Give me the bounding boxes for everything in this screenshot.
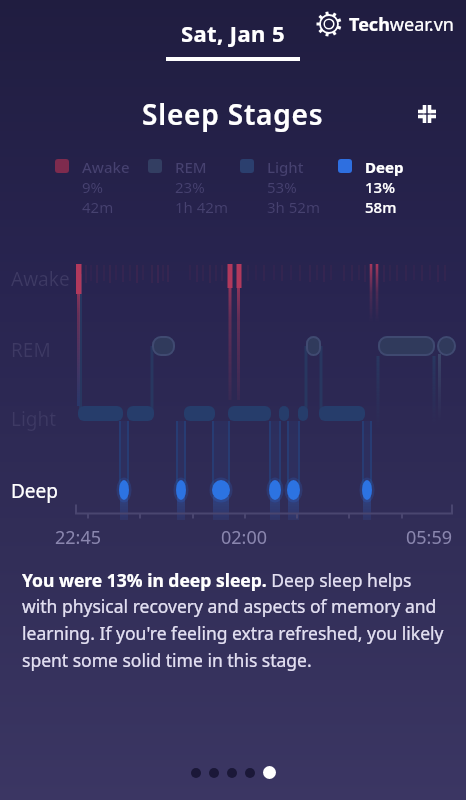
button[interactable]	[227, 768, 237, 778]
button[interactable]	[191, 768, 201, 778]
staticText: Sat, Jan 5	[181, 18, 285, 48]
button[interactable]: Light	[240, 157, 320, 217]
staticText: 22:45	[55, 525, 102, 550]
staticText: 9%	[82, 177, 104, 197]
staticText: You were 13% in deep sleep. Deep sleep h…	[22, 568, 444, 672]
staticText: REM	[175, 157, 207, 177]
staticText: Light	[267, 157, 304, 177]
staticText: Sleep Stages	[142, 95, 324, 133]
button[interactable]: Techwear.vn	[314, 9, 454, 39]
staticText: 02:00	[221, 525, 268, 550]
button[interactable]	[413, 100, 441, 128]
staticText: Awake	[82, 157, 130, 177]
staticText: Awake	[11, 266, 70, 292]
staticText: REM	[11, 337, 51, 363]
button[interactable]	[245, 768, 255, 778]
staticText: Light	[11, 406, 57, 432]
staticText: Deep	[11, 478, 58, 504]
staticText: 1h 42m	[175, 197, 228, 217]
staticText: Deep	[365, 157, 404, 177]
staticText: 05:59	[406, 525, 453, 550]
staticText: 13%	[365, 177, 395, 197]
button[interactable]	[209, 768, 219, 778]
button[interactable]: Deep	[338, 157, 404, 217]
staticText: Techwear.vn	[349, 12, 454, 37]
staticText: 53%	[267, 177, 297, 197]
staticText: 3h 52m	[267, 197, 320, 217]
staticText: 42m	[82, 197, 114, 217]
staticText: 58m	[365, 197, 397, 217]
button[interactable]: Awake	[55, 157, 130, 217]
button[interactable]: REM	[148, 157, 228, 217]
staticText: 23%	[175, 177, 205, 197]
button[interactable]	[263, 766, 276, 779]
